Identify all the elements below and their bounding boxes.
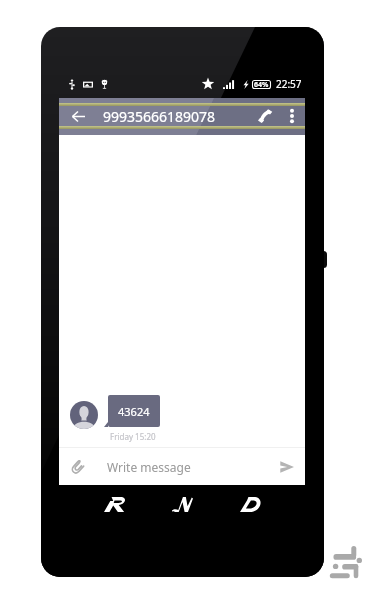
button[interactable]: Recent apps [103,493,125,515]
button[interactable]: Back [239,493,261,515]
button[interactable]: More options [283,106,301,126]
button[interactable]: Call [253,106,277,126]
button[interactable]: Attach [65,454,91,480]
staticText: 22:57 [276,77,302,91]
button[interactable]: Send [273,453,301,481]
staticText: 99935666189078 [103,107,216,126]
staticText: Write message [107,459,191,475]
button[interactable]: Home [171,493,193,515]
other: App logo [329,545,362,579]
staticText: 64% [254,80,269,89]
staticText: Friday 15:20 [110,431,156,442]
button[interactable]: Back [68,106,88,126]
staticText: 43624 [118,404,150,419]
